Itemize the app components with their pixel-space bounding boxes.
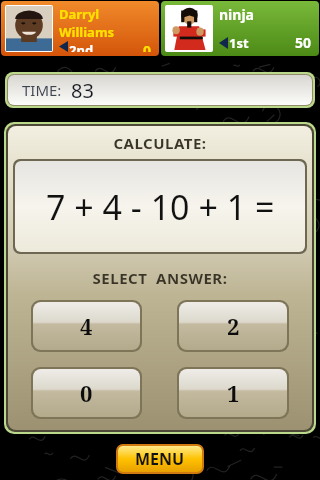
staticText: CALCULATE: <box>8 133 312 153</box>
staticText: 50 <box>295 33 312 52</box>
staticText: SELECT ANSWER: <box>8 268 312 288</box>
staticText: ninja <box>219 5 254 24</box>
staticText: Williams <box>59 23 115 41</box>
button[interactable]: 2 <box>179 302 287 350</box>
staticText: MENU <box>135 448 185 470</box>
staticText: 2nd <box>69 41 94 52</box>
button[interactable]: MENU <box>118 446 202 472</box>
button[interactable]: Darryl <box>1 1 159 56</box>
staticText: TIME: <box>22 80 62 100</box>
staticText: 1 <box>227 378 240 408</box>
staticText: 1st <box>229 34 249 52</box>
staticText: 83 <box>71 77 94 104</box>
staticText: 4 <box>80 311 93 341</box>
staticText: 7 + 4 - 10 + 1 = <box>46 184 275 230</box>
staticText: 0 <box>143 41 152 52</box>
button[interactable]: ninja <box>161 1 319 56</box>
button[interactable]: 1 <box>179 369 287 417</box>
button[interactable]: 0 <box>33 369 140 417</box>
staticText: 0 <box>80 378 93 408</box>
staticText: 2 <box>227 311 240 341</box>
staticText: Darryl <box>59 5 100 23</box>
button[interactable]: 4 <box>33 302 140 350</box>
